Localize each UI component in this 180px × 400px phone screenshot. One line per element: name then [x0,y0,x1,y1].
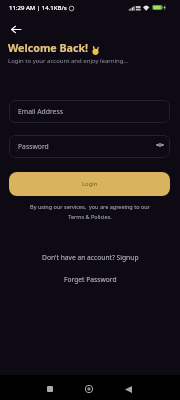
button[interactable]: Email Address [9,100,170,123]
button[interactable]: Back [116,377,140,400]
staticText: Login to your account and enjoy learning… [8,57,129,65]
button[interactable]: Don't have an account? Signup [42,253,139,262]
button[interactable]: Password [9,135,170,158]
staticText: Email Address [18,107,63,116]
staticText: By using our services, you are agreeing … [0,203,180,220]
staticText: Password [18,142,49,151]
button[interactable]: Show password [154,139,166,151]
staticText: Don't have an account? Signup [42,253,139,262]
button[interactable]: Forget Password [64,275,117,284]
button[interactable]: Home [77,377,101,400]
staticText: 11:29 AM | 14.1KB/s [9,4,67,12]
button[interactable]: Login [9,172,170,196]
staticText: Welcome Back! [8,41,89,56]
staticText: Login [82,180,98,188]
button[interactable]: Recents [38,377,62,400]
button[interactable]: Back [4,17,28,41]
staticText: Forget Password [64,275,117,284]
